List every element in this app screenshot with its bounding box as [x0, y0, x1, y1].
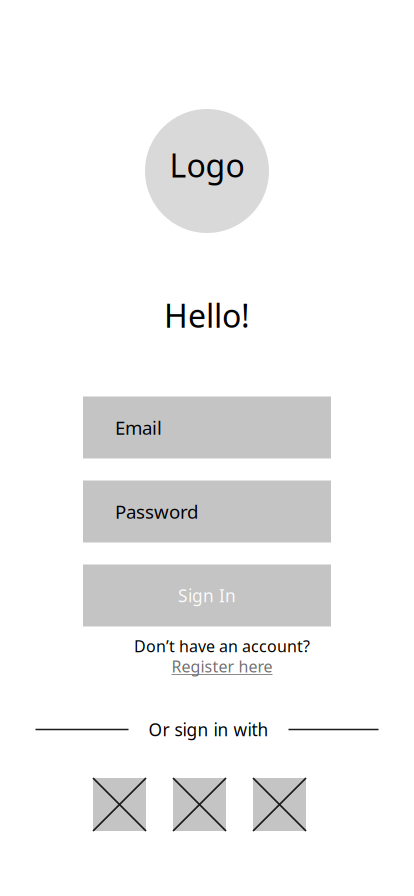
staticText: Logo [169, 144, 244, 186]
staticText: Password [115, 499, 198, 524]
staticText: Hello! [164, 294, 250, 336]
button[interactable]: Sign in with Facebook [253, 778, 306, 831]
staticText: Register here [171, 656, 272, 677]
button[interactable]: Password [83, 480, 331, 542]
button[interactable]: Sign In [83, 564, 331, 626]
button[interactable]: Sign in with Apple [173, 778, 226, 831]
staticText: Sign In [178, 584, 236, 607]
staticText: Don’t have an account? [134, 635, 310, 657]
button[interactable]: Register here [171, 656, 272, 677]
button[interactable]: Sign in with Google [93, 778, 146, 831]
staticText: Or sign in with [148, 718, 268, 741]
staticText: Email [115, 415, 162, 440]
button[interactable]: Email [83, 396, 331, 458]
